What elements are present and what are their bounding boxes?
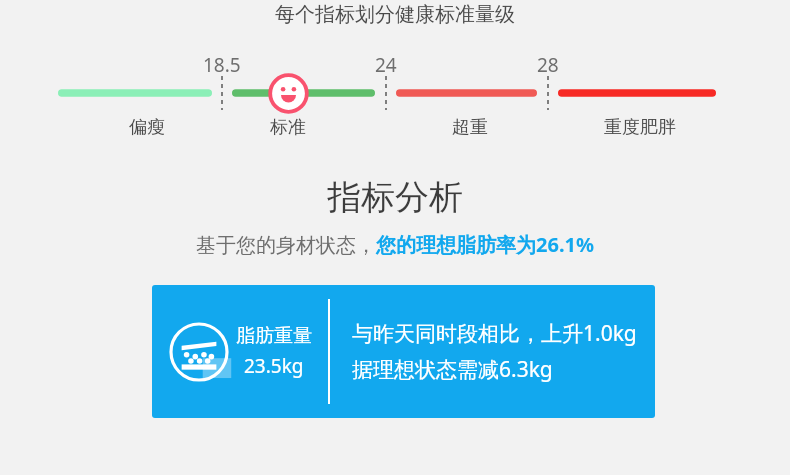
- staticText: 重度肥胖: [604, 116, 676, 139]
- staticText: 偏瘦: [129, 116, 165, 139]
- staticText: 23.5kg: [244, 353, 304, 379]
- staticText: 18.5: [203, 52, 241, 78]
- staticText: 每个指标划分健康标准量级: [275, 2, 515, 27]
- staticText: 基于您的身材状态，您的理想脂肪率为26.1%: [196, 231, 594, 258]
- button[interactable]: 脂肪重量: [152, 285, 655, 418]
- staticText: 据理想状态需减6.3kg: [352, 355, 553, 384]
- staticText: 28: [537, 52, 559, 78]
- staticText: 标准: [270, 116, 306, 139]
- staticText: 指标分析: [327, 176, 463, 219]
- staticText: 与昨天同时段相比，上升1.0kg: [352, 319, 637, 348]
- staticText: 脂肪重量: [236, 324, 312, 348]
- button[interactable]: 标准指示器: [268, 73, 309, 114]
- staticText: 超重: [452, 116, 488, 139]
- staticText: 24: [375, 52, 397, 78]
